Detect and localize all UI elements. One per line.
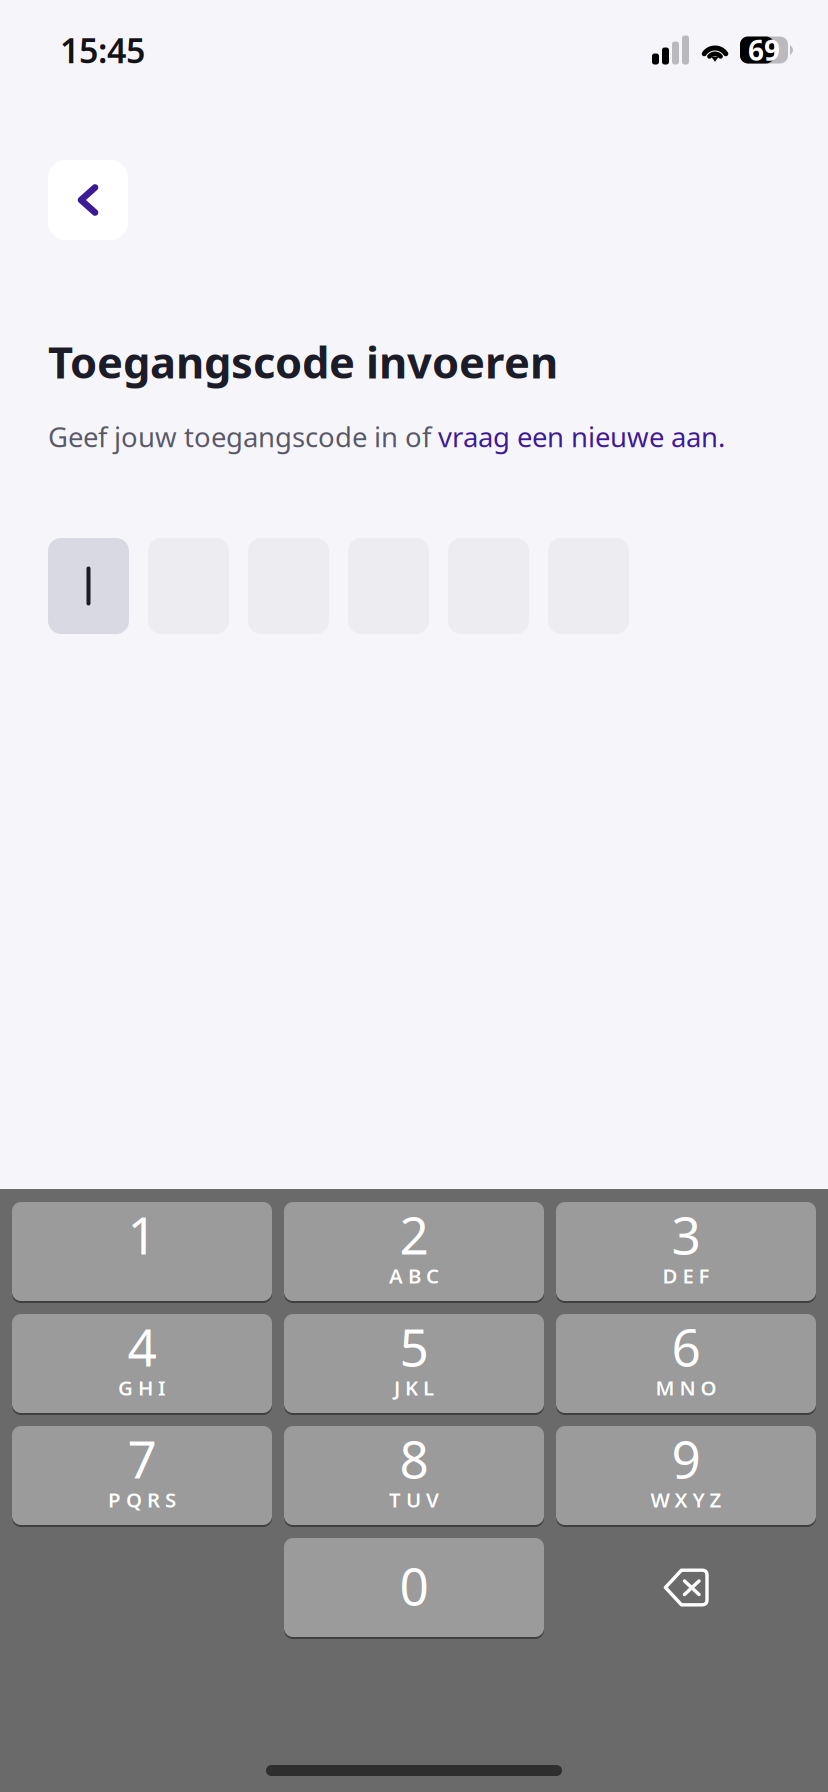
button[interactable]: 6 [556, 1314, 816, 1413]
staticText: 69 [748, 31, 780, 69]
button[interactable]: 9 [556, 1426, 816, 1525]
staticText: 2 [399, 1199, 428, 1269]
button[interactable]: 5 [284, 1314, 544, 1413]
button[interactable]: Back [48, 160, 128, 240]
button[interactable]: 0 [284, 1538, 544, 1637]
button[interactable]: 4 [12, 1314, 272, 1413]
button[interactable]: 8 [284, 1426, 544, 1525]
staticText: G H I [118, 1374, 166, 1401]
staticText: vraag een nieuwe aan. [438, 418, 725, 455]
button[interactable]: 3 [556, 1202, 816, 1301]
staticText: T U V [389, 1486, 439, 1513]
staticText: P Q R S [108, 1486, 176, 1513]
staticText: 9 [671, 1423, 700, 1493]
staticText: 8 [399, 1423, 428, 1493]
staticText: J K L [394, 1374, 434, 1401]
button[interactable]: 1 [12, 1202, 272, 1301]
staticText: Geef jouw toegangscode in of [48, 418, 438, 455]
staticText: 15:45 [60, 27, 145, 73]
button[interactable]: 7 [12, 1426, 272, 1525]
button[interactable]: vraag een nieuwe aan. [438, 418, 725, 455]
staticText: W X Y Z [650, 1486, 721, 1513]
staticText: 1 [127, 1199, 156, 1269]
staticText: 7 [127, 1423, 156, 1493]
staticText: 5 [399, 1311, 428, 1381]
staticText: 0 [399, 1550, 428, 1620]
staticText: A B C [389, 1262, 439, 1289]
staticText: Toegangscode invoeren [48, 332, 558, 391]
button[interactable]: Delete [556, 1538, 816, 1637]
staticText: D E F [662, 1262, 709, 1289]
staticText: 3 [671, 1199, 700, 1269]
staticText: 4 [127, 1311, 156, 1381]
staticText: M N O [655, 1374, 716, 1401]
button[interactable]: 2 [284, 1202, 544, 1301]
staticText: 6 [671, 1311, 700, 1381]
